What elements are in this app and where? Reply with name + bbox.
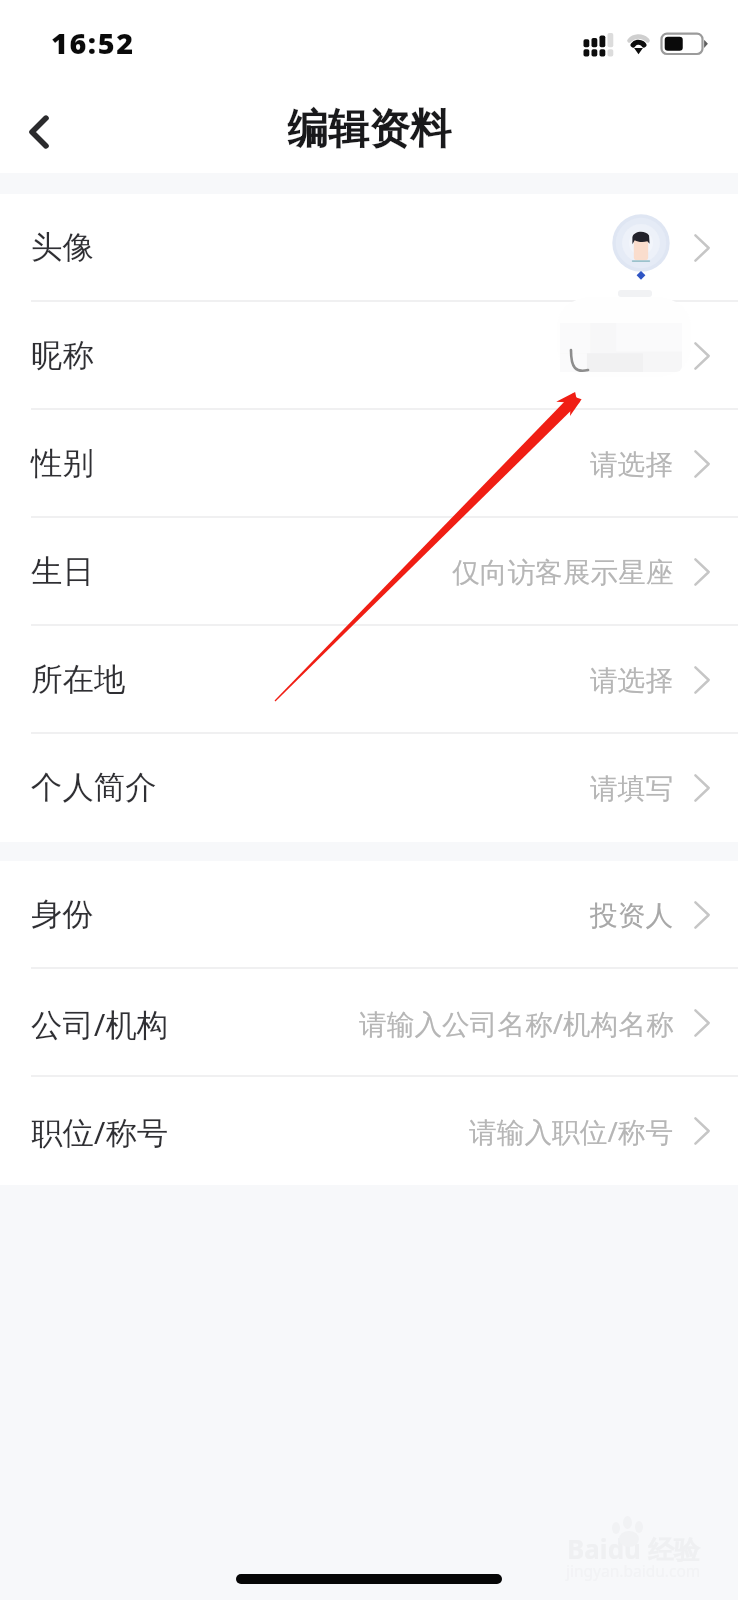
button[interactable]: 生日 [0,518,738,626]
staticText: 身份 [31,895,94,935]
staticText: 职位/称号 [31,1110,169,1153]
staticText: 公司/机构 [31,1002,169,1045]
staticText: 所在地 [31,660,126,700]
staticText: 16:52 [51,23,135,62]
button[interactable]: 身份 [0,861,738,969]
staticText: 请输入职位/称号 [469,1112,674,1150]
button[interactable]: 职位/称号 [0,1077,738,1185]
staticText: Baidu 经验 [567,1531,700,1567]
staticText: 请输入公司名称/机构名称 [359,1004,674,1042]
staticText: 请选择 [590,447,674,482]
button[interactable]: 公司/机构 [0,969,738,1077]
staticText: 性别 [31,444,94,484]
button[interactable]: 性别 [0,410,738,518]
staticText: 生日 [31,552,94,592]
button[interactable]: 个人简介 [0,734,738,842]
staticText: 头像 [31,228,94,268]
button[interactable]: 头像 [0,194,738,302]
staticText: 请选择 [590,663,674,698]
staticText: 投资人 [590,898,674,933]
staticText: 昵称 [31,336,94,376]
button[interactable]: 所在地 [0,626,738,734]
staticText: 个人简介 [31,768,157,808]
button[interactable]: Back [0,93,78,171]
staticText: 请填写 [590,771,674,806]
button[interactable]: 昵称 [0,302,738,410]
staticText: 仅向访客展示星座 [452,555,674,590]
staticText: 编辑资料 [287,104,451,156]
